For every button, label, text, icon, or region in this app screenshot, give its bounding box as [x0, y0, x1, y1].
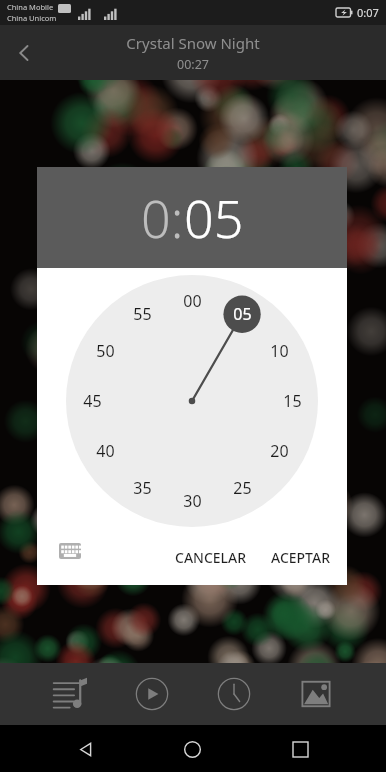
staticText: 45: [83, 390, 102, 412]
staticText: Crystal Snow Night: [126, 33, 260, 53]
staticText: 00: [183, 290, 202, 312]
staticText: 35: [133, 477, 152, 499]
staticText: 0:07: [357, 5, 379, 20]
staticText: CANCELAR: [175, 548, 247, 567]
staticText: 20: [270, 440, 289, 462]
button[interactable]: Home: [170, 727, 214, 771]
staticText: China Unicom: [7, 13, 57, 23]
button[interactable]: CANCELAR: [165, 538, 257, 577]
button[interactable]: 25: [225, 471, 259, 505]
button[interactable]: Back: [63, 727, 107, 771]
button[interactable]: 55: [125, 297, 159, 331]
staticText: 0:: [141, 182, 184, 253]
button[interactable]: Image: [290, 668, 342, 720]
button[interactable]: Switch to keyboard input: [50, 531, 90, 571]
button[interactable]: 50: [88, 334, 122, 368]
button[interactable]: 20: [262, 434, 296, 468]
staticText: 30: [183, 490, 202, 512]
staticText: 05: [233, 303, 252, 325]
button[interactable]: 15: [275, 384, 309, 418]
staticText: 25: [233, 477, 252, 499]
button[interactable]: 35: [125, 471, 159, 505]
button[interactable]: Back: [0, 29, 48, 77]
staticText: 00:27: [177, 56, 209, 73]
button[interactable]: 10: [262, 334, 296, 368]
staticText: 05: [184, 182, 244, 253]
button[interactable]: 40: [88, 434, 122, 468]
staticText: 10: [270, 340, 289, 362]
staticText: 50: [96, 340, 115, 362]
button[interactable]: 05: [225, 297, 259, 331]
staticText: ACEPTAR: [271, 548, 331, 567]
button[interactable]: ACEPTAR: [261, 538, 341, 577]
button[interactable]: Play: [126, 668, 178, 720]
button[interactable]: Recent apps: [278, 727, 322, 771]
button[interactable]: 45: [75, 384, 109, 418]
button[interactable]: 30: [175, 484, 209, 518]
staticText: 55: [133, 303, 152, 325]
button[interactable]: 00: [175, 284, 209, 318]
staticText: China Mobile: [7, 2, 54, 12]
button[interactable]: Timer: [208, 668, 260, 720]
staticText: 40: [96, 440, 115, 462]
button[interactable]: Playlist: [44, 668, 96, 720]
staticText: 15: [283, 390, 302, 412]
